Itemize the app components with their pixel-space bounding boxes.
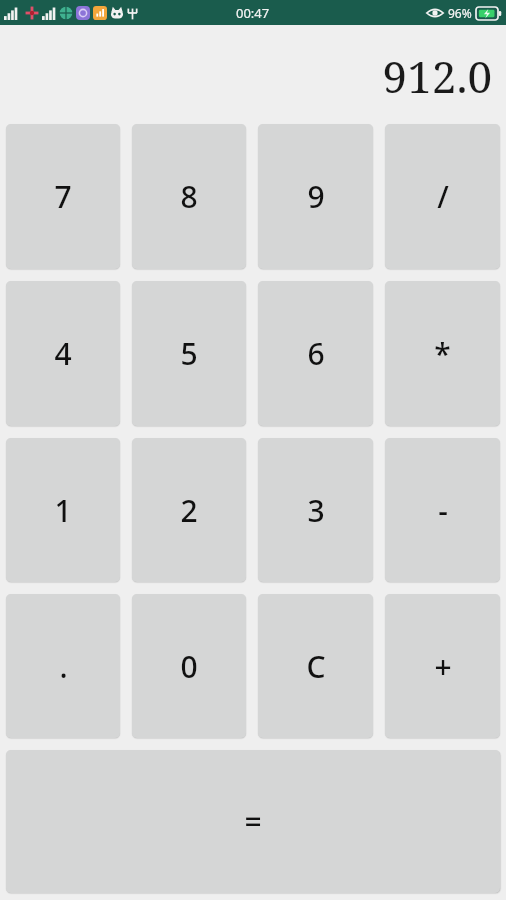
staticText: 5: [180, 333, 198, 374]
staticText: 6: [307, 333, 325, 374]
button[interactable]: 4: [6, 281, 120, 426]
staticText: 0: [180, 646, 198, 687]
staticText: 9: [307, 176, 325, 217]
button[interactable]: /: [385, 124, 500, 269]
button[interactable]: 1: [6, 438, 120, 582]
staticText: 2: [180, 490, 198, 531]
button[interactable]: 7: [6, 124, 120, 269]
button[interactable]: 0: [132, 594, 246, 738]
staticText: 3: [307, 490, 325, 531]
staticText: 7: [54, 176, 72, 217]
staticText: 912.0: [382, 46, 492, 106]
staticText: 8: [180, 176, 198, 217]
button[interactable]: 8: [132, 124, 246, 269]
staticText: +: [434, 646, 452, 687]
button[interactable]: 5: [132, 281, 246, 426]
staticText: 00:47: [236, 4, 270, 22]
button[interactable]: 2: [132, 438, 246, 582]
staticText: C: [306, 646, 326, 687]
staticText: =: [244, 801, 262, 842]
button[interactable]: =: [6, 750, 500, 893]
button[interactable]: 9: [258, 124, 373, 269]
staticText: 4: [54, 333, 72, 374]
button[interactable]: +: [385, 594, 500, 738]
button[interactable]: -: [385, 438, 500, 582]
button[interactable]: *: [385, 281, 500, 426]
button[interactable]: C: [258, 594, 373, 738]
staticText: 96%: [448, 5, 472, 21]
button[interactable]: 3: [258, 438, 373, 582]
button[interactable]: .: [6, 594, 120, 738]
staticText: -: [438, 490, 448, 531]
button[interactable]: 6: [258, 281, 373, 426]
staticText: .: [59, 646, 68, 687]
staticText: /: [437, 176, 449, 217]
staticText: 1: [54, 490, 72, 531]
staticText: *: [434, 333, 451, 374]
